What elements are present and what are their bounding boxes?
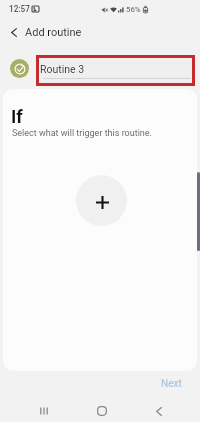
button[interactable]: Navigate up [2, 18, 25, 46]
staticText: Add routine [25, 26, 82, 39]
staticText: If [11, 106, 23, 127]
button[interactable]: Routine 3 [39, 58, 192, 83]
button[interactable]: Recent apps [26, 398, 61, 422]
staticText: Next [161, 378, 182, 390]
staticText: Routine 3 [40, 63, 85, 75]
button[interactable]: Next [152, 373, 190, 395]
button[interactable]: Home [84, 398, 119, 422]
button[interactable]: Back [141, 398, 176, 422]
button[interactable]: Routine icon [10, 59, 29, 78]
staticText: 56% [126, 5, 141, 14]
button[interactable]: Add condition [76, 175, 127, 226]
staticText: 12:57 [9, 4, 30, 14]
staticText: Select what will trigger this routine. [12, 128, 152, 139]
